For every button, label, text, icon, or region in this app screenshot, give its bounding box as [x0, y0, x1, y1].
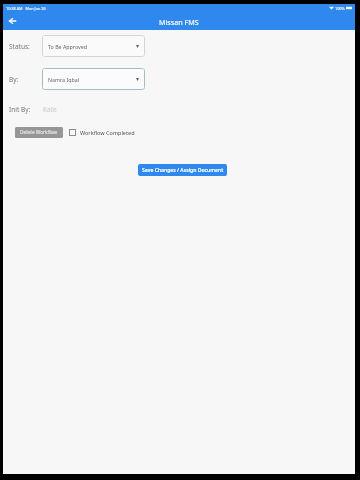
- button[interactable]: To Be Approved: [42, 35, 145, 57]
- staticText: Save Changes / Assign Document: [142, 167, 224, 174]
- button[interactable]: Namra Iqbal: [42, 68, 145, 90]
- button[interactable]: Save Changes / Assign Document: [138, 164, 227, 176]
- staticText: To Be Approved: [48, 43, 87, 50]
- button[interactable]: Back: [4, 13, 20, 29]
- button[interactable]: Delete Workflow: [15, 127, 63, 138]
- staticText: Missan FMS: [159, 17, 199, 27]
- staticText: 100%: [335, 6, 345, 11]
- staticText: Init By:: [9, 105, 31, 114]
- staticText: Delete Workflow: [20, 129, 58, 136]
- button[interactable]: Workflow Completed: [69, 127, 135, 138]
- staticText: Namra Iqbal: [48, 76, 80, 83]
- staticText: Workflow Completed: [80, 129, 135, 136]
- staticText: By:: [9, 75, 19, 84]
- staticText: 10:38 AM Mon Jun 26: [6, 6, 46, 11]
- staticText: Kate: [43, 105, 57, 114]
- staticText: Status:: [9, 42, 30, 51]
